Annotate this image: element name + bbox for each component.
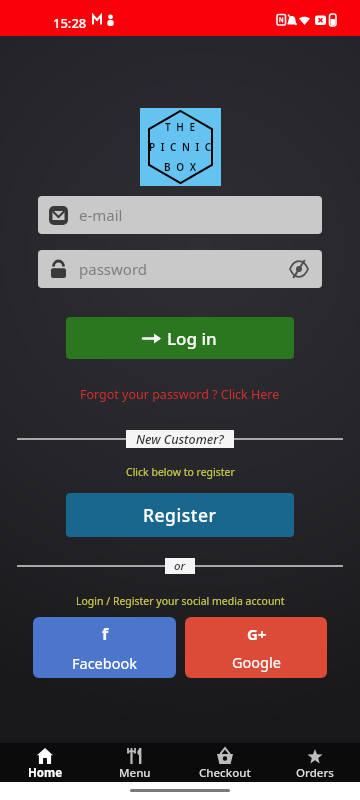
button[interactable]: Home xyxy=(0,743,90,782)
staticText: Click below to register xyxy=(126,465,235,479)
staticText: T H E xyxy=(165,120,197,134)
button[interactable]: Register xyxy=(66,493,294,537)
button[interactable]: Checkout xyxy=(180,743,270,782)
staticText: New Customer? xyxy=(136,431,224,447)
button[interactable]: Menu xyxy=(90,743,180,782)
staticText: Facebook xyxy=(72,653,138,673)
staticText: P I C N I C xyxy=(149,140,213,154)
staticText: Home xyxy=(28,765,63,781)
staticText: Login / Register your social media accou… xyxy=(76,594,285,608)
staticText: f xyxy=(102,623,109,645)
staticText: Log in xyxy=(167,327,217,350)
button[interactable]: Orders xyxy=(270,743,360,782)
staticText: Checkout xyxy=(199,765,251,781)
staticText: G+ xyxy=(247,624,267,644)
button[interactable]: Log in xyxy=(66,317,294,359)
staticText: 15:28 xyxy=(53,14,87,32)
staticText: or xyxy=(174,558,186,574)
staticText: B O X xyxy=(164,160,198,174)
staticText: e-mail xyxy=(79,205,123,225)
button[interactable]: password xyxy=(38,250,322,288)
button[interactable]: e-mail xyxy=(38,196,322,234)
button[interactable]: f xyxy=(33,617,176,678)
button[interactable]: G+ xyxy=(185,617,327,678)
staticText: Orders xyxy=(296,765,334,781)
button[interactable]: Forgot your password ? Click Here xyxy=(0,385,360,403)
staticText: Forgot your password ? Click Here xyxy=(80,386,280,403)
staticText: Google xyxy=(232,652,281,672)
staticText: Register xyxy=(143,503,217,527)
staticText: Menu xyxy=(119,765,151,781)
staticText: password xyxy=(79,259,147,279)
